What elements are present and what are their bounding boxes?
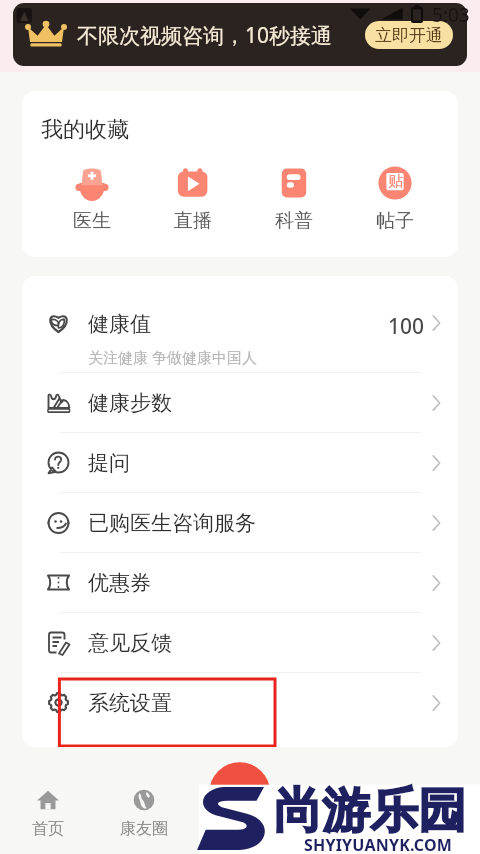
staticText: 5:03 [432,2,470,28]
staticText: 优惠券 [88,570,432,596]
button[interactable]: 贴 [344,165,445,233]
button[interactable]: 系统设置 [22,673,458,732]
button[interactable]: 药房 [288,779,384,849]
staticText: 不限次视频咨询，10秒接通 [77,21,333,50]
staticText: 已购医生咨询服务 [88,510,432,536]
button[interactable]: 意见反馈 [22,613,458,672]
button[interactable]: 健康值 [22,276,458,372]
staticText: 科普 [275,209,313,233]
button[interactable]: 科普 [243,165,344,233]
staticText: 健康步数 [88,390,432,416]
staticText: 关注健康 争做健康中国人 [88,347,257,367]
staticText: 直播 [174,209,212,233]
staticText: 我的 [416,819,448,839]
button[interactable]: 问诊 [192,779,288,849]
staticText: 药房 [320,819,352,839]
button[interactable]: 我的 [384,779,480,849]
button[interactable]: 立即开通 [365,21,453,49]
button[interactable]: 优惠券 [22,553,458,612]
staticText: 医生 [73,209,111,233]
staticText: 问诊 [224,819,256,839]
staticText: 提问 [88,450,432,476]
button[interactable]: 康友圈 [96,779,192,849]
button[interactable]: 不限次视频咨询，10秒接通 [13,3,467,66]
staticText: 立即开通 [375,25,443,46]
staticText: 我的收藏 [41,116,129,144]
button[interactable]: 已购医生咨询服务 [22,493,458,552]
staticText: 健康值 [88,311,151,337]
button[interactable]: 医生 [41,165,142,233]
staticText: 贴 [388,172,403,191]
staticText: 系统设置 [88,690,432,716]
staticText: 首页 [32,819,64,839]
button[interactable]: 健康步数 [22,373,458,432]
staticText: 帖子 [376,209,414,233]
staticText: 100 [388,312,425,341]
button[interactable]: 提问 [22,433,458,492]
button[interactable]: 直播 [142,165,243,233]
button[interactable]: 首页 [0,779,96,849]
staticText: 尚游乐园 [274,781,466,841]
staticText: 康友圈 [120,819,168,839]
staticText: SHYIYUANYK.COM [304,834,453,854]
staticText: 意见反馈 [88,630,432,656]
